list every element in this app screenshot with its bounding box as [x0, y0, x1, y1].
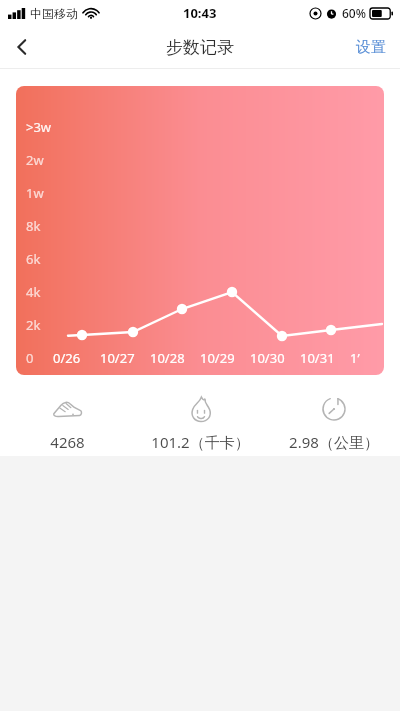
button[interactable]: Distance — [267, 390, 400, 454]
staticText: 4268 — [50, 432, 85, 452]
staticText: 2.98（公里） — [289, 432, 379, 452]
staticText: 1’ — [350, 349, 360, 367]
staticText: 0/26 — [53, 349, 81, 367]
staticText: 4k — [26, 283, 41, 301]
button[interactable]: 设置 — [342, 30, 400, 65]
button[interactable]: Steps — [0, 390, 134, 454]
staticText: 10:43 — [183, 4, 217, 22]
staticText: 步数记录 — [166, 37, 234, 58]
staticText: 8k — [26, 217, 41, 235]
button[interactable]: Back — [0, 26, 44, 68]
staticText: 设置 — [356, 38, 386, 57]
staticText: 10/29 — [200, 349, 235, 367]
staticText: 60% — [342, 5, 366, 21]
staticText: 10/30 — [250, 349, 285, 367]
staticText: 1w — [26, 184, 44, 202]
staticText: 10/31 — [300, 349, 335, 367]
staticText: 10/27 — [100, 349, 135, 367]
button[interactable]: Calories — [134, 390, 267, 454]
staticText: 2w — [26, 151, 44, 169]
staticText: 101.2（千卡） — [151, 432, 250, 452]
staticText: 0 — [26, 349, 34, 367]
button[interactable]: >3w — [16, 86, 384, 375]
staticText: 中国移动 — [30, 6, 78, 21]
staticText: 2k — [26, 316, 41, 334]
staticText: 6k — [26, 250, 41, 268]
staticText: >3w — [26, 118, 52, 136]
staticText: 10/28 — [150, 349, 185, 367]
